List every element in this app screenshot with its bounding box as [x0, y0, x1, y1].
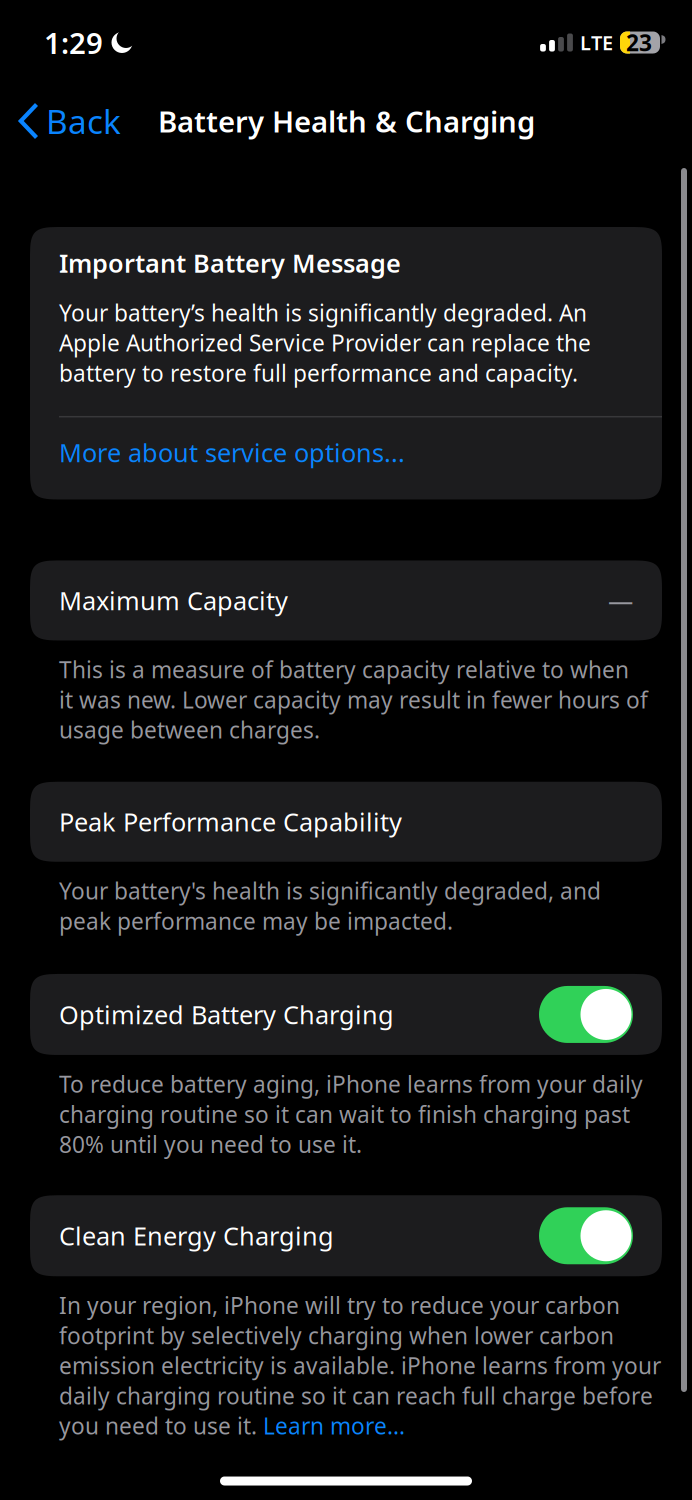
- staticText: This is a measure of battery capacity re…: [59, 654, 648, 745]
- staticText: Maximum Capacity: [59, 584, 288, 617]
- staticText: Back: [46, 99, 121, 143]
- staticText: Important Battery Message: [59, 246, 401, 280]
- staticText: Peak Performance Capability: [59, 805, 402, 838]
- staticText: More about service options...: [59, 436, 405, 469]
- button[interactable]: More about service options...: [30, 417, 662, 499]
- staticText: In your region, iPhone will try to reduc…: [59, 1290, 661, 1411]
- staticText: Optimized Battery Charging: [59, 998, 394, 1031]
- staticText: Your battery’s health is significantly d…: [59, 298, 591, 388]
- button[interactable]: Clean Energy Charging: [0, 1195, 692, 1276]
- staticText: —: [608, 584, 633, 617]
- staticText: Learn more...: [263, 1411, 405, 1441]
- button[interactable]: Back: [0, 97, 135, 145]
- staticText: 1:29: [44, 23, 103, 62]
- staticText: Clean Energy Charging: [59, 1219, 334, 1252]
- staticText: 23: [626, 27, 652, 57]
- staticText: Your battery's health is significantly d…: [59, 876, 601, 936]
- button[interactable]: Optimized Battery Charging: [0, 974, 692, 1055]
- button[interactable]: Learn more...: [263, 1411, 405, 1441]
- staticText: you need to use it.: [59, 1411, 263, 1441]
- staticText: Battery Health & Charging: [158, 101, 535, 140]
- staticText: LTE: [580, 29, 613, 56]
- staticText: To reduce battery aging, iPhone learns f…: [59, 1069, 643, 1159]
